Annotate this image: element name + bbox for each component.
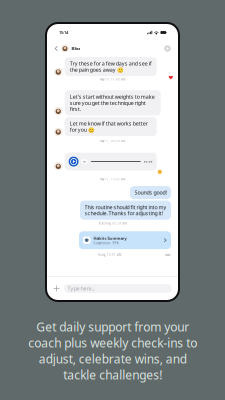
staticText: 15:14 [59,30,68,35]
staticText: Type here... [67,285,94,292]
staticText: Bliss [71,46,80,51]
staticText: Sounds good! [134,189,166,196]
staticText: Habits Summary [93,235,126,241]
staticText: 00:06 [144,160,153,163]
staticText: Get daily support from your coach plus w… [28,319,197,383]
button[interactable]: Add attachment [52,284,61,293]
button[interactable]: Back [52,43,60,54]
staticText: Let me know if that works better for you… [70,120,148,133]
staticText: Completion: 99% [93,241,118,245]
staticText: May 11, 09:18 AM [100,139,125,143]
staticText: x1 [83,160,86,163]
button[interactable]: Habits Summary [79,231,171,249]
staticText: Try these for a few days and see if the … [70,60,152,73]
button[interactable]: Play voice message [69,157,78,166]
staticText: Let's start without weights to make sure… [70,93,155,112]
staticText: May 11, 10:25 AM [100,177,125,181]
staticText: May 10, 11:49 AM [100,78,125,81]
button[interactable]: Settings [163,44,172,53]
staticText: Today, 10:51 AM [98,253,121,257]
staticText: This routine should fit right into my sc… [84,204,166,217]
button[interactable]: x1 [81,159,88,164]
staticText: NEW [165,253,171,257]
staticText: Yesterday, 09:24 AM [98,222,126,225]
